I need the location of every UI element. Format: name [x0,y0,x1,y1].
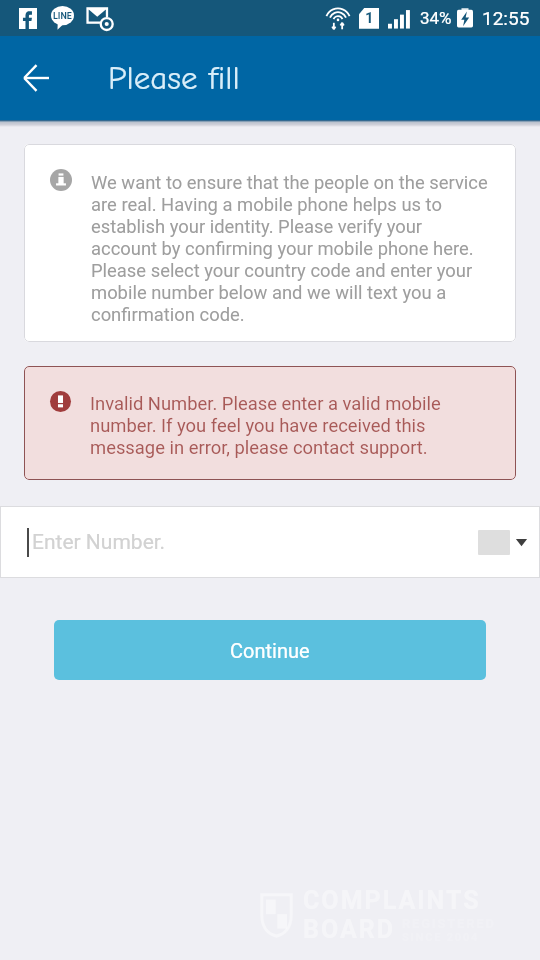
staticText: 1 [365,9,374,27]
staticText: 34% [420,8,452,28]
staticText: Please fill [108,59,240,97]
button[interactable]: Back [12,54,60,102]
button[interactable]: Select country code [478,506,528,578]
staticText: Enter Number. [32,530,166,555]
staticText: LINE [53,11,72,22]
button[interactable]: Continue [54,620,486,680]
staticText: We want to ensure that the people on the… [91,172,488,326]
staticText: Invalid Number. Please enter a valid mob… [90,393,441,459]
button[interactable]: Enter Number. [27,506,478,578]
staticText: Continue [230,639,310,662]
staticText: 12:55 [482,7,530,29]
